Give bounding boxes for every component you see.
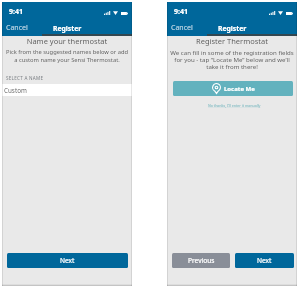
button[interactable]: Cancel <box>2 18 42 36</box>
staticText: Next <box>257 256 272 265</box>
staticText: Next <box>60 256 75 265</box>
staticText: Cancel <box>6 23 28 33</box>
staticText: Locate Me <box>224 85 255 93</box>
staticText: Pick from the suggested names below or a… <box>2 48 132 63</box>
button[interactable]: Custom <box>2 84 132 96</box>
button[interactable] <box>42 18 132 36</box>
button[interactable]: Locate Me <box>173 81 293 96</box>
button[interactable]: Next <box>235 253 294 268</box>
button[interactable]: Cancel <box>167 18 207 36</box>
button[interactable] <box>207 18 297 36</box>
staticText: SELECT A NAME <box>6 75 44 81</box>
staticText: Register <box>53 24 82 33</box>
button[interactable]: Previous <box>172 253 230 268</box>
button[interactable]: No thanks, I’ll enter it manually <box>208 103 261 108</box>
staticText: 9:41 <box>9 7 23 17</box>
staticText: We can fill in some of the registration … <box>167 48 297 71</box>
staticText: Cancel <box>171 23 193 33</box>
staticText: Register Thermostat <box>167 36 297 46</box>
button[interactable]: Next <box>7 253 128 268</box>
staticText: 9:41 <box>174 7 188 17</box>
staticText: Previous <box>188 256 215 265</box>
staticText: Name your thermostat <box>2 36 132 46</box>
staticText: Custom <box>4 86 27 95</box>
staticText: Register <box>218 24 247 33</box>
